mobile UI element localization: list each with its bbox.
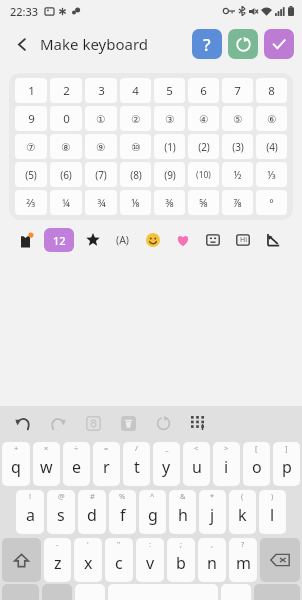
- button[interactable]: Text shortcuts: [232, 229, 254, 251]
- button[interactable]: Hearts: [172, 229, 194, 251]
- button[interactable]: >: [213, 442, 240, 486]
- button[interactable]: :: [136, 538, 164, 582]
- button[interactable]: Stickers: [262, 229, 284, 251]
- button[interactable]: Kaomoji: [202, 229, 224, 251]
- button[interactable]: [: [243, 442, 270, 486]
- button[interactable]: 1: [15, 78, 47, 103]
- button[interactable]: ¾: [85, 190, 117, 215]
- staticText: z: [54, 552, 62, 574]
- button[interactable]: ②: [120, 106, 151, 131]
- button[interactable]: ;: [167, 538, 195, 582]
- button[interactable]: Help: [192, 29, 222, 59]
- staticText: ②: [131, 113, 141, 125]
- button[interactable]: Delete: [117, 412, 139, 434]
- button[interactable]: %: [109, 490, 136, 534]
- button[interactable]: Emoji: [142, 229, 164, 251]
- button[interactable]: _: [153, 442, 180, 486]
- button[interactable]: ⅜: [154, 190, 185, 215]
- button[interactable]: Comma: [75, 584, 105, 600]
- button[interactable]: (5): [15, 162, 47, 187]
- button[interactable]: 6: [188, 78, 219, 103]
- button[interactable]: ^: [139, 490, 166, 534]
- button[interactable]: Reset: [228, 29, 258, 59]
- button[interactable]: ⑤: [222, 106, 253, 131]
- button[interactable]: +: [2, 442, 30, 486]
- button[interactable]: ⅔: [15, 190, 47, 215]
- button[interactable]: Shift: [2, 538, 41, 582]
- button[interactable]: (A): [112, 229, 134, 251]
- button[interactable]: ¼: [50, 190, 82, 215]
- button[interactable]: Back: [5, 27, 39, 61]
- button[interactable]: ①: [85, 106, 117, 131]
- button[interactable]: ⑨: [85, 134, 117, 159]
- button[interactable]: (10): [188, 162, 219, 187]
- button[interactable]: ": [105, 538, 133, 582]
- button[interactable]: (2): [188, 134, 219, 159]
- button[interactable]: ⅝: [188, 190, 219, 215]
- button[interactable]: 3: [85, 78, 117, 103]
- button[interactable]: #: [78, 490, 106, 534]
- button[interactable]: ⑦: [15, 134, 47, 159]
- button[interactable]: (8): [120, 162, 151, 187]
- button[interactable]: Period: [221, 584, 251, 600]
- button[interactable]: Lock: [82, 412, 104, 434]
- button[interactable]: Favorites: [82, 229, 104, 251]
- button[interactable]: 12: [44, 228, 74, 252]
- button[interactable]: 5: [154, 78, 185, 103]
- button[interactable]: 0: [50, 106, 82, 131]
- button[interactable]: ⑩: [120, 134, 151, 159]
- button[interactable]: Keypad: [187, 412, 209, 434]
- button[interactable]: (6): [50, 162, 82, 187]
- button[interactable]: 2: [50, 78, 82, 103]
- button[interactable]: (7): [85, 162, 117, 187]
- staticText: ): [271, 491, 274, 501]
- button[interactable]: @: [47, 490, 75, 534]
- staticText: 22:33: [10, 4, 39, 19]
- button[interactable]: (: [229, 490, 256, 534]
- button[interactable]: New: [14, 229, 36, 251]
- button[interactable]: ③: [154, 106, 185, 131]
- button[interactable]: Redo: [47, 412, 69, 434]
- button[interactable]: (4): [256, 134, 287, 159]
- button[interactable]: ⑧: [50, 134, 82, 159]
- button[interactable]: 9: [15, 106, 47, 131]
- button[interactable]: Confirm: [264, 29, 294, 59]
- button[interactable]: °: [256, 190, 287, 215]
- button[interactable]: -: [44, 538, 71, 582]
- button[interactable]: ⅛: [120, 190, 151, 215]
- button[interactable]: Backspace: [260, 538, 300, 582]
- button[interactable]: Refresh: [152, 412, 174, 434]
- button[interactable]: (9): [154, 162, 185, 187]
- staticText: ^: [150, 491, 155, 501]
- button[interactable]: ⅓: [256, 162, 287, 187]
- button[interactable]: <: [183, 442, 210, 486]
- button[interactable]: (3): [222, 134, 253, 159]
- button[interactable]: ,: [198, 538, 226, 582]
- button[interactable]: 4: [120, 78, 151, 103]
- button[interactable]: ⅞: [222, 190, 253, 215]
- button[interactable]: *: [199, 490, 226, 534]
- staticText: 6: [200, 83, 207, 99]
- button[interactable]: ⑥: [256, 106, 287, 131]
- button[interactable]: Undo: [12, 412, 34, 434]
- button[interactable]: Settings: [42, 584, 72, 600]
- button[interactable]: ]: [273, 442, 300, 486]
- button[interactable]: ×: [33, 442, 60, 486]
- button[interactable]: ?: [229, 538, 257, 582]
- button[interactable]: =: [93, 442, 120, 486]
- button[interactable]: ): [259, 490, 286, 534]
- button[interactable]: &: [169, 490, 196, 534]
- staticText: 4: [132, 83, 139, 99]
- button[interactable]: ÷: [63, 442, 90, 486]
- button[interactable]: ④: [188, 106, 219, 131]
- button[interactable]: !: [16, 490, 44, 534]
- button[interactable]: ½: [222, 162, 253, 187]
- button[interactable]: (1): [154, 134, 185, 159]
- button[interactable]: /: [123, 442, 150, 486]
- button[interactable]: 7: [222, 78, 253, 103]
- button[interactable]: ': [74, 538, 102, 582]
- button[interactable]: 8: [256, 78, 287, 103]
